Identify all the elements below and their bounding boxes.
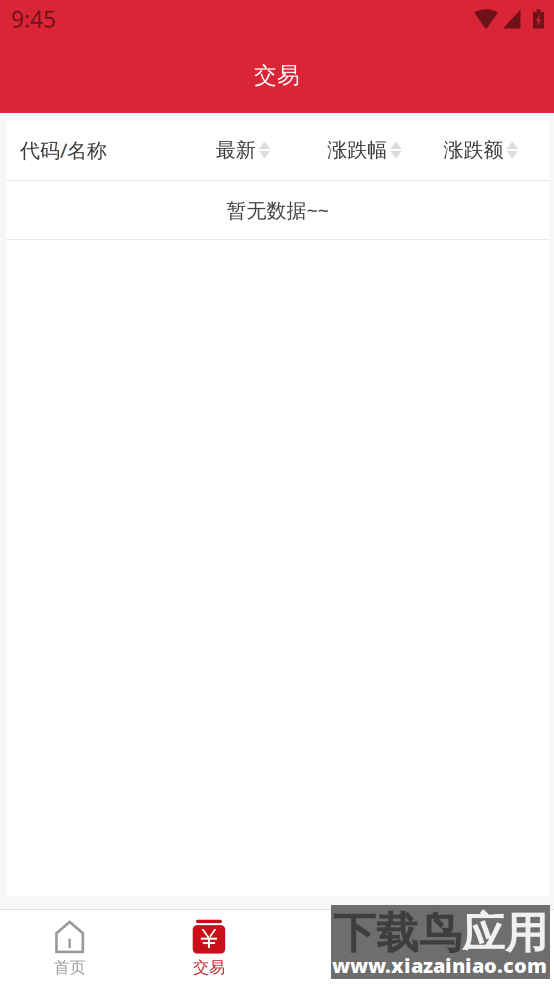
staticText: 行情 xyxy=(332,958,364,977)
staticText: 涨跌额 xyxy=(444,138,504,162)
button[interactable]: 最新，排序 xyxy=(216,138,270,162)
staticText: 交易 xyxy=(254,62,300,89)
staticText: 代码/名称 xyxy=(20,137,107,163)
button[interactable]: 首页 xyxy=(0,910,139,984)
staticText: 下载鸟 xyxy=(333,907,462,959)
staticText: www.xiazainiao.com xyxy=(332,952,547,979)
staticText: 应用 xyxy=(462,907,548,959)
staticText: 交易 xyxy=(193,958,225,977)
staticText: 9:45 xyxy=(11,4,56,34)
button[interactable]: 交易 xyxy=(139,910,279,984)
staticText: 暂无数据~~ xyxy=(226,197,328,223)
staticText: 我的 xyxy=(472,958,504,977)
button[interactable]: 涨跌幅，排序 xyxy=(327,138,402,162)
button[interactable]: 涨跌额，排序 xyxy=(444,138,518,162)
staticText: 最新 xyxy=(216,138,256,162)
staticText: 首页 xyxy=(54,958,86,977)
button[interactable]: 我的 xyxy=(418,910,554,984)
button[interactable]: 行情 xyxy=(279,910,418,984)
staticText: 涨跌幅 xyxy=(327,138,387,162)
